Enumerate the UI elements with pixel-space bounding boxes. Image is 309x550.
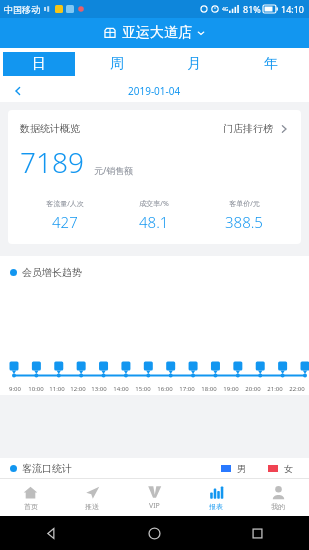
staticText: 男 [237,463,246,474]
button[interactable]: 周 [81,52,153,76]
staticText: 元/销售额 [94,164,134,176]
button[interactable]: 数据统计概览 [8,110,301,244]
staticText: 12:00 [70,385,86,393]
button[interactable]: 日 [3,52,75,76]
button[interactable]: VIP [123,479,185,516]
staticText: 14:00 [113,385,129,393]
staticText: 报表 [209,502,223,511]
staticText: 周 [110,55,124,73]
button[interactable]: 亚运大道店 [96,22,213,44]
staticText: 9:00 [9,385,21,393]
button[interactable]: Previous day [8,81,28,101]
staticText: 年 [264,55,278,73]
button[interactable]: 推送 [61,479,123,516]
staticText: 日 [32,55,46,73]
staticText: 成交率/% [139,199,169,209]
staticText: 2019-01-04 [128,84,181,98]
staticText: 22:00 [289,385,305,393]
staticText: 数据统计概览 [20,122,80,135]
staticText: 18:00 [201,385,217,393]
staticText: 20:00 [245,385,261,393]
staticText: 21:00 [267,385,283,393]
button[interactable]: 月 [158,52,230,76]
staticText: 388.5 [225,212,263,232]
staticText: 月 [187,55,201,73]
staticText: 11:00 [49,385,65,393]
staticText: 女 [284,463,293,474]
staticText: 客流量/人次 [46,199,84,209]
staticText: 会员增长趋势 [22,266,82,279]
staticText: 客单价/元 [229,199,260,209]
staticText: 81% [243,3,261,15]
staticText: 17:00 [179,385,195,393]
staticText: 16:00 [157,385,173,393]
staticText: 14:10 [281,3,305,15]
button[interactable]: 首页 [0,479,61,516]
button[interactable]: 客单价/元 [199,199,289,232]
other: Back [45,527,58,540]
staticText: 门店排行榜 [223,122,273,135]
staticText: 7189 [20,143,84,181]
staticText: 4G [222,6,229,13]
staticText: 427 [52,212,78,232]
staticText: 推送 [85,502,99,511]
staticText: 19:00 [223,385,239,393]
button[interactable]: 我的 [247,479,309,516]
other: Home [148,527,161,540]
staticText: VIP [149,501,160,511]
staticText: 13:00 [91,385,107,393]
other: Recents [251,527,264,540]
staticText: 中国移动 [4,4,40,15]
staticText: 亚运大道店 [122,24,192,42]
button[interactable]: 报表 [185,479,247,516]
staticText: 10:00 [28,385,44,393]
staticText: 15:00 [135,385,151,393]
button[interactable]: 年 [235,52,307,76]
staticText: 客流口统计 [22,462,72,475]
button[interactable]: 门店排行榜 [223,122,289,135]
button[interactable]: 客流量/人次 [20,199,109,232]
button[interactable]: 成交率/% [109,199,199,232]
staticText: 我的 [271,502,285,511]
staticText: 首页 [24,502,38,511]
staticText: 48.1 [139,212,169,232]
